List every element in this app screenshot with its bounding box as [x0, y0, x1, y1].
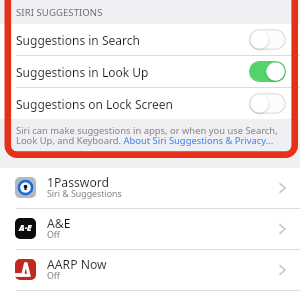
button[interactable]: Suggestions on Lock Screen [0, 88, 300, 119]
staticText: Suggestions in Search [16, 32, 140, 48]
staticText: A·E [19, 222, 32, 233]
staticText: Suggestions in Look Up [16, 64, 149, 80]
staticText: Siri & Suggestions [47, 188, 122, 200]
button[interactable]: Suggestions in Look Up [0, 56, 300, 87]
staticText: SIRI SUGGESTIONS [16, 6, 103, 19]
button[interactable]: AARP Now [0, 250, 300, 290]
button[interactable]: Switch off [249, 29, 286, 50]
staticText: Siri can make suggestions in apps, or wh… [16, 124, 282, 147]
staticText: 1Password [47, 174, 110, 191]
button[interactable]: 1Password [0, 168, 300, 208]
staticText: Suggestions on Lock Screen [16, 96, 173, 112]
button[interactable]: A·E [0, 209, 300, 249]
button[interactable]: Suggestions in Search [0, 24, 300, 55]
staticText: Off [47, 270, 60, 282]
staticText: Off [47, 229, 60, 241]
button[interactable]: Switch off [249, 93, 286, 114]
staticText: AARP Now [47, 256, 107, 273]
staticText: A&E [47, 215, 71, 232]
button[interactable]: Switch on [249, 61, 286, 82]
